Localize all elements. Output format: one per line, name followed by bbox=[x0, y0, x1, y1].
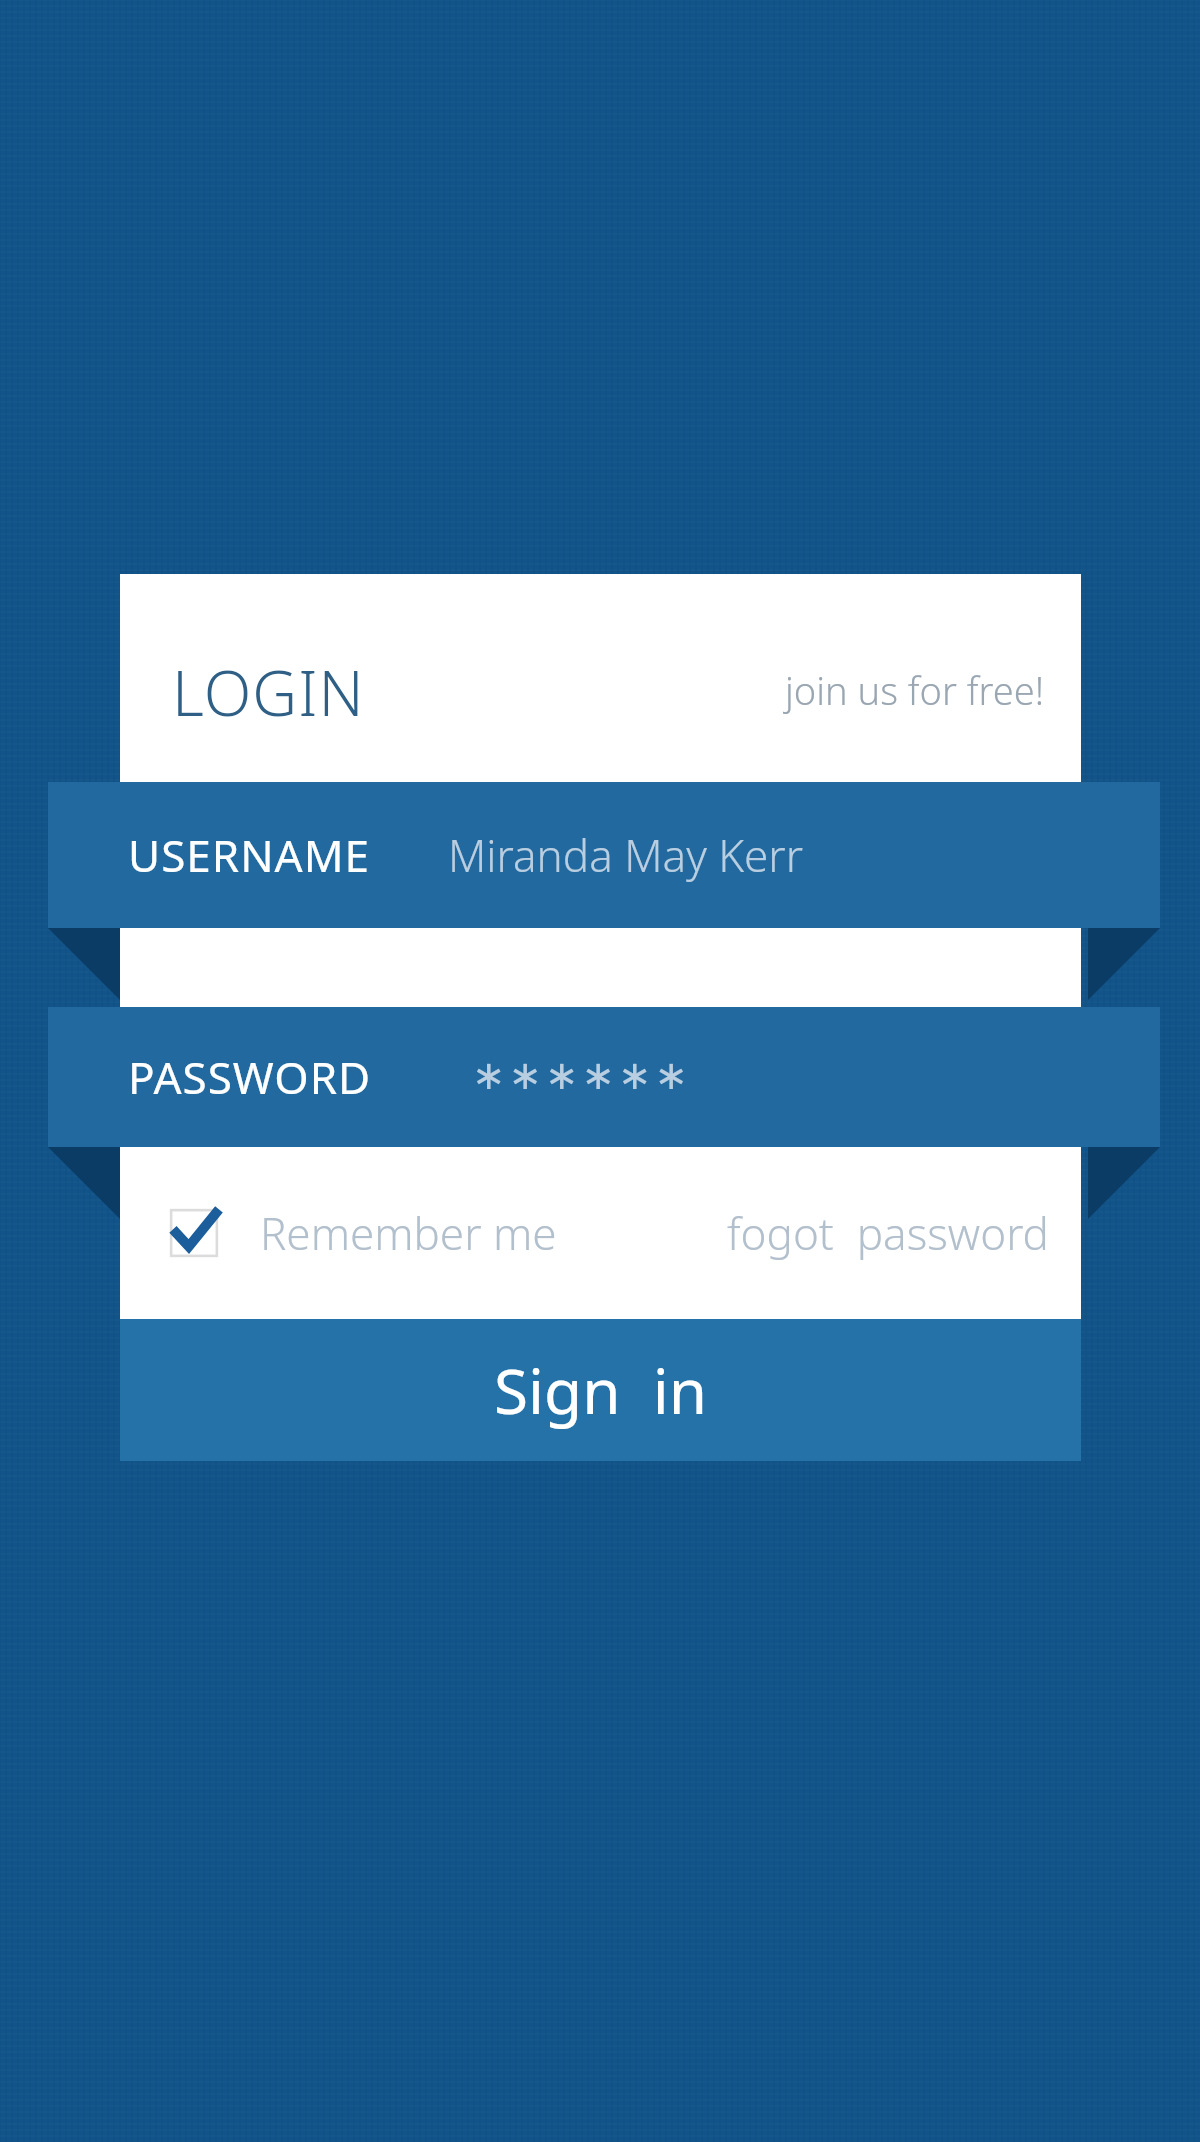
button[interactable]: Sign in bbox=[120, 1319, 1081, 1461]
button[interactable]: fogot password bbox=[727, 1203, 1049, 1263]
staticText: join us for free! bbox=[785, 664, 1045, 716]
staticText: Remember me bbox=[260, 1203, 557, 1263]
button[interactable]: USERNAME bbox=[48, 782, 1160, 928]
staticText: USERNAME bbox=[128, 825, 371, 885]
button[interactable]: Remember me checkbox bbox=[168, 1207, 220, 1259]
staticText: Miranda May Kerr bbox=[448, 825, 804, 885]
staticText: ∗∗∗∗∗∗ bbox=[472, 1052, 692, 1099]
staticText: LOGIN bbox=[172, 650, 365, 734]
button[interactable]: PASSWORD bbox=[48, 1007, 1160, 1147]
staticText: Sign in bbox=[494, 1348, 708, 1432]
staticText: PASSWORD bbox=[128, 1047, 372, 1107]
button[interactable]: Remember me bbox=[260, 1203, 557, 1263]
button[interactable]: join us for free! bbox=[785, 664, 1045, 716]
staticText: fogot password bbox=[727, 1203, 1049, 1263]
